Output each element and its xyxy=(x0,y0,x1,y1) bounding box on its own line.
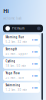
staticText: View xyxy=(32,86,38,89)
button[interactable]: Morning Run xyxy=(3,34,40,45)
button[interactable]: Strength xyxy=(3,46,40,57)
button[interactable]: Cycling xyxy=(3,58,40,69)
staticText: welcome back xyxy=(3,17,21,20)
staticText: Hi xyxy=(3,7,9,14)
staticText: Premium xyxy=(12,27,24,30)
staticText: 1.2 km . 30 min xyxy=(5,88,27,92)
staticText: Swimming xyxy=(5,83,20,87)
staticText: 25 min . core xyxy=(5,76,24,80)
staticText: Yoga Flow xyxy=(5,71,19,75)
staticText: View xyxy=(32,74,38,77)
button[interactable]: Yoga Flow xyxy=(3,70,40,81)
staticText: Morning Run xyxy=(5,35,24,39)
staticText: 18 km . 50 min xyxy=(5,64,26,68)
staticText: View xyxy=(32,38,38,41)
staticText: Cycling xyxy=(5,59,15,63)
staticText: 5.2 km . 32 min xyxy=(5,40,27,44)
staticText: Strength xyxy=(5,47,17,51)
button[interactable]: Swimming xyxy=(3,82,40,93)
staticText: View xyxy=(32,50,38,53)
staticText: 45 min . upper xyxy=(5,52,27,56)
staticText: View xyxy=(32,62,38,65)
